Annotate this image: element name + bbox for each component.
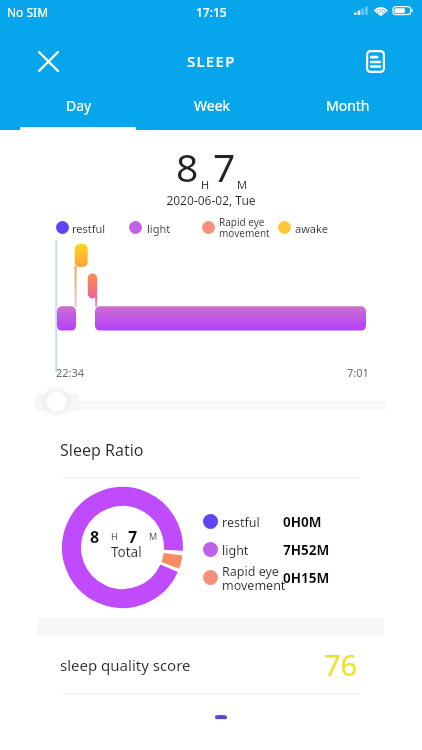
staticText: 17:15 (196, 4, 227, 20)
staticText: 22:34 (56, 365, 85, 380)
staticText: Month (326, 96, 370, 115)
button[interactable]: Week (145, 86, 279, 124)
staticText: sleep quality score (60, 655, 191, 675)
staticText: 7 (213, 140, 236, 193)
staticText: Total (111, 543, 142, 561)
staticText: M (237, 177, 247, 192)
button[interactable]: Report (355, 41, 395, 81)
staticText: No SIM (7, 4, 49, 20)
staticText: H (201, 177, 210, 192)
staticText: H (111, 530, 118, 542)
staticText: 7 (128, 526, 138, 548)
staticText: M (149, 530, 158, 542)
staticText: awake (295, 221, 329, 236)
staticText: light (147, 221, 171, 236)
staticText: Day (66, 96, 92, 115)
staticText: 76 (324, 645, 358, 684)
staticText: restful (72, 221, 106, 236)
button[interactable]: Day (12, 86, 146, 124)
staticText: 7H52M (283, 541, 330, 559)
staticText: 8 (90, 526, 100, 548)
staticText: Sleep Ratio (60, 439, 144, 461)
staticText: 0H0M (283, 513, 322, 531)
staticText: 8 (176, 140, 199, 193)
staticText: Week (194, 96, 231, 115)
staticText: light (222, 542, 286, 559)
button[interactable]: Month (281, 86, 415, 124)
staticText: restful (222, 514, 286, 531)
staticText: 7:01 (347, 365, 369, 380)
staticText: 2020-06-02, Tue (0, 192, 422, 208)
button[interactable]: Close (28, 41, 68, 81)
staticText: SLEEP (187, 51, 236, 71)
staticText: 0H15M (283, 569, 330, 587)
staticText: Rapid eye movement (222, 563, 286, 594)
staticText: Rapid eye movement (219, 215, 270, 240)
button[interactable] (35, 391, 385, 412)
